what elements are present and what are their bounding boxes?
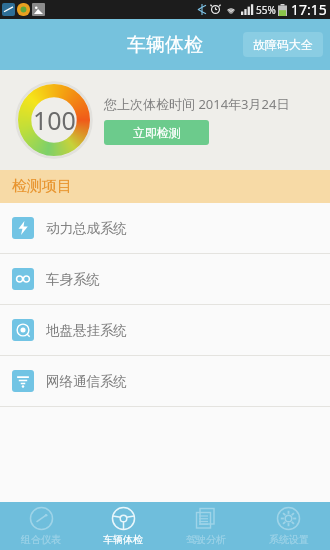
staticText: 地盘悬挂系统 (46, 322, 127, 339)
button[interactable]: 立即检测 (104, 120, 209, 145)
button[interactable]: 故障码大全 (243, 32, 323, 57)
button[interactable]: 车身系统 (0, 254, 330, 304)
button[interactable]: 驾驶分析 (164, 502, 247, 550)
staticText: 组合仪表 (21, 533, 61, 546)
staticText: 检测项目 (12, 177, 72, 196)
staticText: 您上次体检时间 2014年3月24日 (104, 95, 290, 113)
button[interactable]: 动力总成系统 (0, 203, 330, 253)
button[interactable]: 网络通信系统 (0, 356, 330, 406)
staticText: 动力总成系统 (46, 220, 127, 237)
staticText: 故障码大全 (253, 37, 313, 52)
button[interactable]: 系统设置 (247, 502, 330, 550)
staticText: 车身系统 (46, 271, 100, 288)
staticText: 17:15 (291, 0, 327, 19)
staticText: 立即检测 (133, 125, 181, 140)
staticText: 车辆体检 (103, 533, 143, 546)
staticText: 驾驶分析 (186, 533, 226, 546)
button[interactable]: 车辆体检 (82, 502, 164, 550)
staticText: 车辆体检 (127, 33, 203, 57)
button[interactable]: 地盘悬挂系统 (0, 305, 330, 355)
staticText: 系统设置 (269, 533, 309, 546)
staticText: 55% (256, 3, 276, 17)
staticText: 网络通信系统 (46, 373, 127, 390)
staticText: 100 (33, 103, 76, 137)
button[interactable]: 组合仪表 (0, 502, 82, 550)
